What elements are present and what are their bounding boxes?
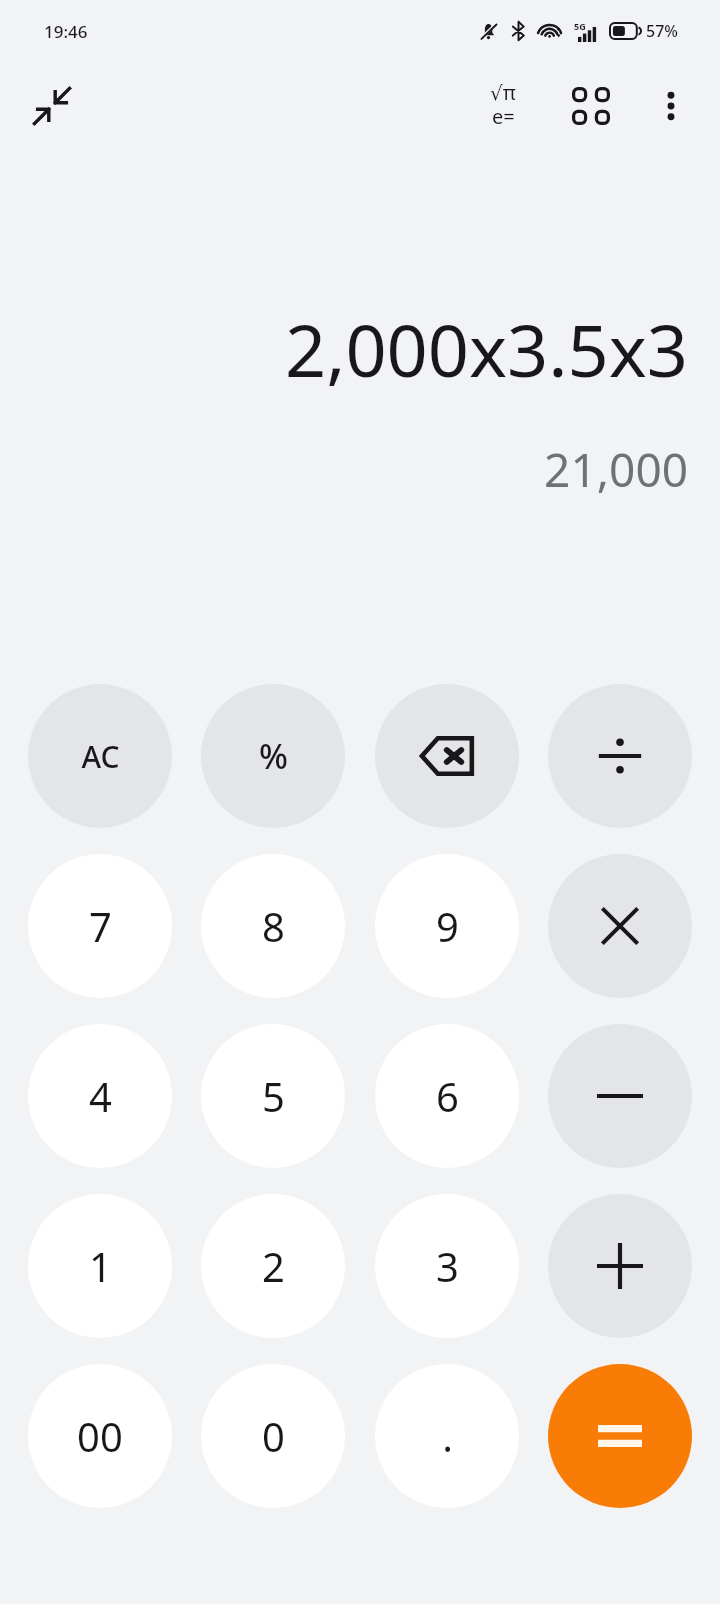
staticText: 2,000x3.5x3 [32,300,688,398]
button[interactable]: 8 [201,854,345,998]
button[interactable]: AC [28,684,172,828]
staticText: 0 [262,1409,285,1463]
button[interactable]: % [201,684,345,828]
staticText: 00 [77,1409,123,1463]
staticText: e= [492,103,515,130]
button[interactable]: Collapse [16,70,88,142]
button[interactable]: 3 [375,1194,519,1338]
button[interactable]: 2 [201,1194,345,1338]
staticText: 5 [262,1069,285,1123]
staticText: 57% [646,20,678,42]
button[interactable]: More options [638,73,704,139]
staticText: 9 [436,899,459,953]
button[interactable]: 7 [28,854,172,998]
button[interactable]: 4 [28,1024,172,1168]
button[interactable]: 9 [375,854,519,998]
staticText: 3 [436,1239,459,1293]
staticText: AC [81,736,120,777]
staticText: 1 [89,1239,112,1293]
button[interactable]: . [375,1364,519,1508]
button[interactable]: Divide [548,684,692,828]
button[interactable]: 00 [28,1364,172,1508]
staticText: 2 [262,1239,285,1293]
button[interactable]: Multiply [548,854,692,998]
staticText: 8 [262,899,285,953]
button[interactable]: 0 [201,1364,345,1508]
button[interactable]: 5 [201,1024,345,1168]
staticText: 21,000 [32,438,688,501]
staticText: 6 [436,1069,459,1123]
button[interactable]: Minus [548,1024,692,1168]
button[interactable]: Converters [554,69,628,143]
button[interactable]: Scientific [466,69,540,143]
button[interactable]: 1 [28,1194,172,1338]
staticText: 7 [89,899,112,953]
staticText: √π [490,79,516,106]
staticText: 19:46 [44,20,88,43]
staticText: 4 [89,1069,112,1123]
button[interactable]: 6 [375,1024,519,1168]
button[interactable]: Plus [548,1194,692,1338]
button[interactable]: Equals [548,1364,692,1508]
staticText: % [259,733,288,779]
staticText: 5G [574,20,586,32]
button[interactable]: Backspace [375,684,519,828]
staticText: . [442,1409,453,1463]
